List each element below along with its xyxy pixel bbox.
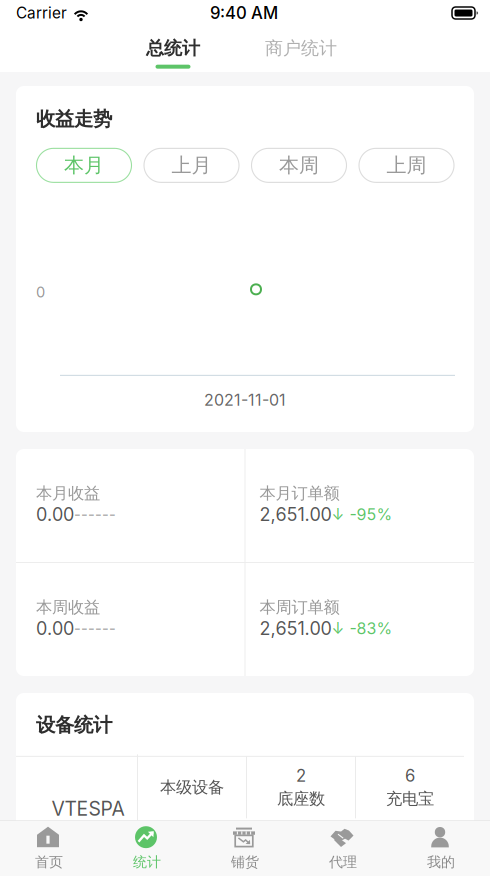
staticText: 0 <box>36 283 45 301</box>
button[interactable]: 统计 <box>98 821 196 875</box>
button[interactable]: 上周 <box>359 148 454 182</box>
staticText: 商户统计 <box>265 37 337 60</box>
staticText: 收益走势 <box>36 107 112 131</box>
staticText: 本周收益 <box>36 597 100 617</box>
staticText: 0.00 <box>36 503 74 525</box>
staticText: 统计 <box>133 853 161 871</box>
button[interactable]: 本周 <box>251 148 346 182</box>
staticText: 2 <box>296 765 306 786</box>
staticText: Carrier <box>16 4 67 22</box>
staticText: 铺货 <box>231 853 259 871</box>
staticText: 本月收益 <box>36 483 100 503</box>
button[interactable]: 总统计 <box>123 26 235 72</box>
staticText: ------ <box>74 619 116 637</box>
button[interactable]: 本月 <box>36 148 131 182</box>
staticText: 本月 <box>64 153 104 178</box>
staticText: 上月 <box>171 153 211 178</box>
staticText: 上周 <box>386 153 426 178</box>
staticText: 设备统计 <box>36 713 112 737</box>
button[interactable]: 商户统计 <box>235 26 367 72</box>
staticText: 总统计 <box>146 37 200 60</box>
staticText: -95% <box>344 505 392 524</box>
staticText: 2,651.00 <box>259 503 331 525</box>
staticText: 本周订单额 <box>259 597 339 617</box>
staticText: -83% <box>344 619 392 638</box>
staticText: VTESPA <box>51 797 124 820</box>
button[interactable]: 首页 <box>0 821 98 875</box>
button[interactable]: 代理 <box>294 821 392 875</box>
staticText: ------ <box>74 505 116 523</box>
staticText: 底座数 <box>277 789 325 809</box>
staticText: 9:40 AM <box>210 3 278 23</box>
staticText: 首页 <box>35 853 63 871</box>
button[interactable]: 铺货 <box>196 821 294 875</box>
staticText: ↓ <box>331 619 344 638</box>
staticText: 6 <box>405 765 415 786</box>
staticText: 2,651.00 <box>259 617 331 639</box>
staticText: 本周 <box>279 153 319 178</box>
staticText: 本月订单额 <box>259 483 339 503</box>
staticText: 我的 <box>427 853 455 871</box>
staticText: 2021-11-01 <box>204 390 286 410</box>
staticText: 代理 <box>329 853 357 871</box>
button[interactable]: 我的 <box>392 821 490 875</box>
button[interactable]: 上月 <box>144 148 239 182</box>
staticText: 0.00 <box>36 617 74 639</box>
staticText: 充电宝 <box>386 789 434 809</box>
staticText: ↓ <box>331 505 344 524</box>
staticText: 本级设备 <box>160 777 224 798</box>
